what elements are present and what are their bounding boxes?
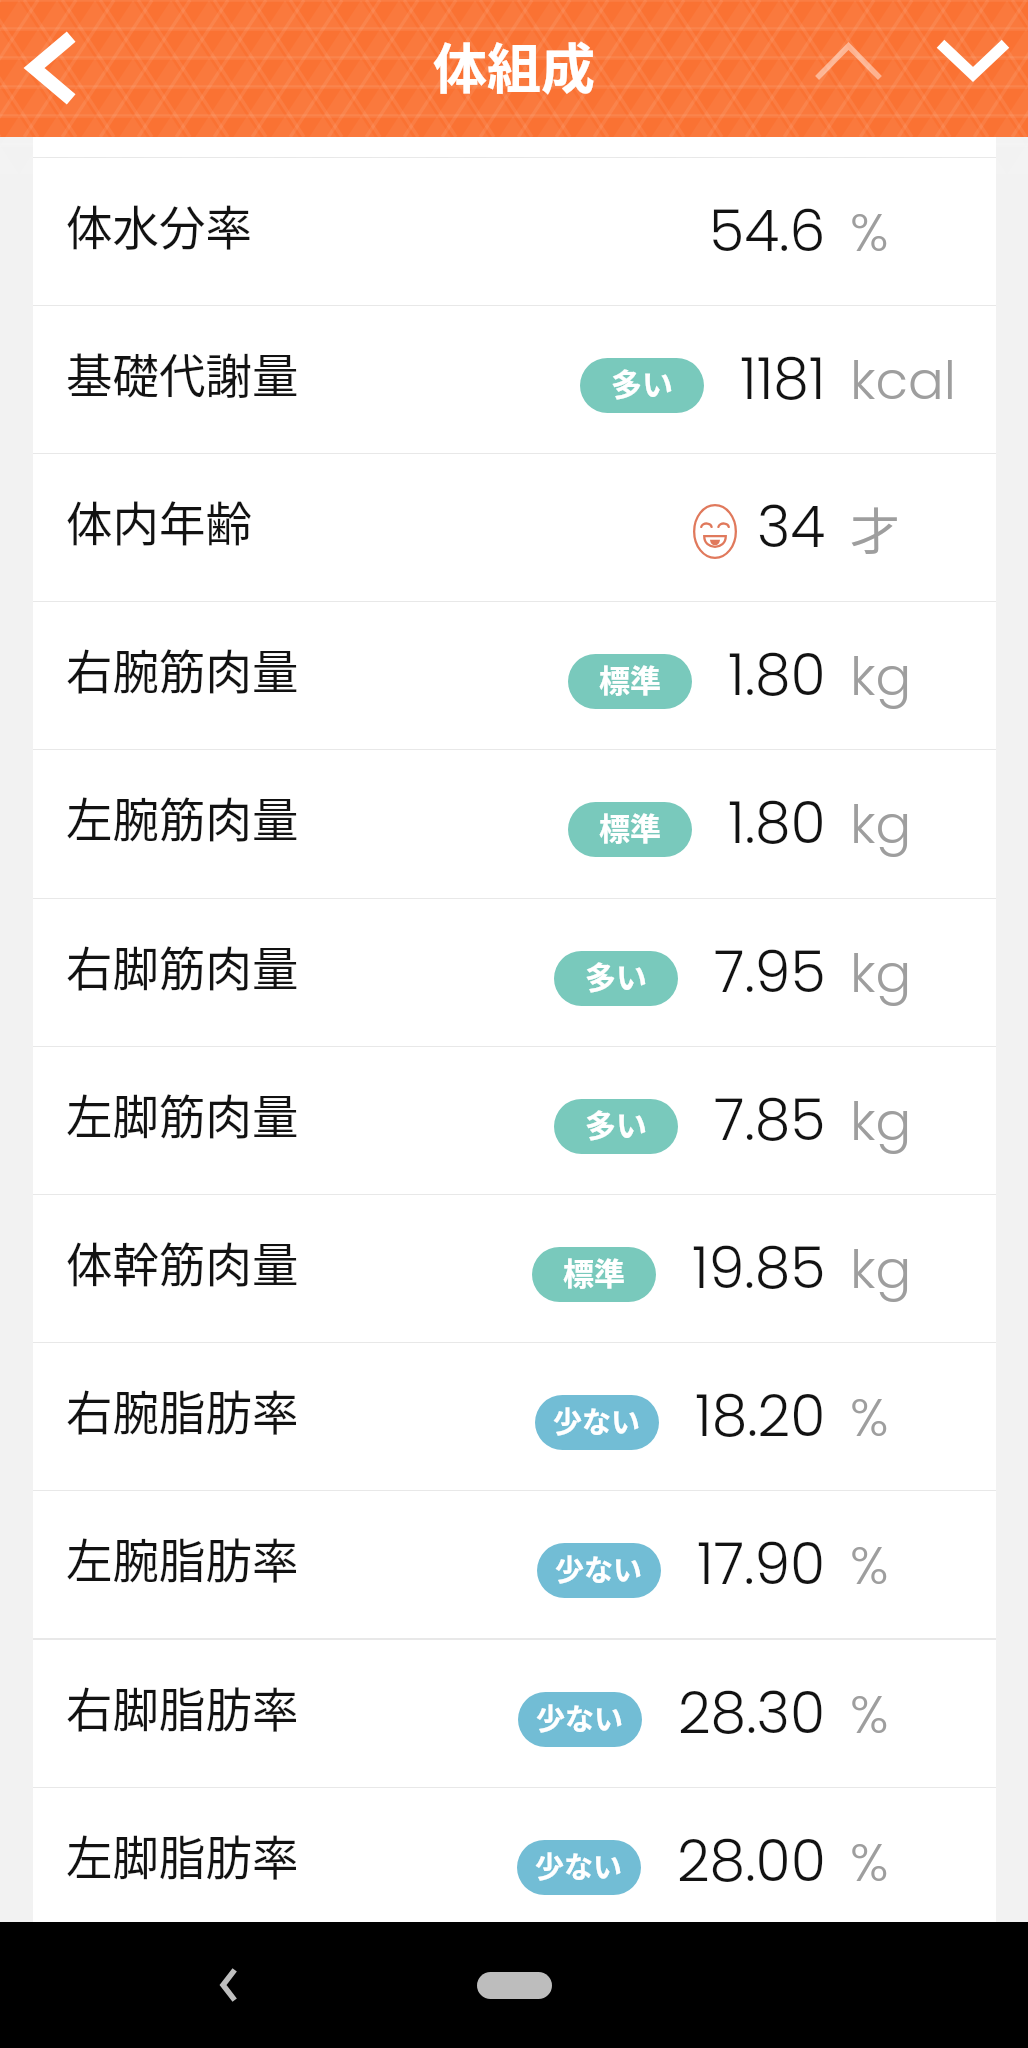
button[interactable]: Back <box>196 1953 260 2017</box>
staticText: 体幹筋肉量 <box>66 1228 299 1295</box>
staticText: 7.85 <box>714 1080 826 1160</box>
staticText: kg <box>850 787 912 861</box>
staticText: 右腕筋肉量 <box>66 635 299 702</box>
staticText: 1.80 <box>728 783 826 863</box>
button[interactable]: 体内年齢 34 才 <box>33 454 996 600</box>
staticText: 19.85 <box>692 1228 826 1308</box>
staticText: 17.90 <box>697 1524 826 1604</box>
staticText: 54.6 <box>709 191 826 271</box>
button[interactable]: 基礎代謝量 多い 1181 kcal <box>33 306 996 452</box>
staticText: kg <box>850 936 912 1010</box>
staticText: % <box>850 1380 889 1454</box>
button[interactable]: 右腕筋肉量 標準 1.80 kg <box>33 602 996 748</box>
staticText: 左腕筋肉量 <box>66 783 299 850</box>
button[interactable]: 右腕脂肪率 少ない 18.20 % <box>33 1343 996 1489</box>
button[interactable]: 左脚筋肉量 多い 7.85 kg <box>33 1047 996 1193</box>
button[interactable]: Next record <box>929 32 1017 90</box>
staticText: 左脚筋肉量 <box>66 1080 299 1147</box>
staticText: kg <box>850 1232 912 1306</box>
staticText: 28.00 <box>677 1821 826 1901</box>
staticText: 多い <box>611 360 673 405</box>
staticText: 才 <box>850 492 900 564</box>
button[interactable]: Home <box>477 1972 552 1999</box>
staticText: 多い <box>585 953 647 998</box>
staticText: 1181 <box>740 339 826 419</box>
staticText: % <box>850 1677 889 1751</box>
button[interactable]: 右脚脂肪率 少ない 28.30 % <box>33 1640 996 1786</box>
staticText: 少ない <box>553 1399 641 1441</box>
button[interactable]: Previous record <box>806 33 892 89</box>
staticText: % <box>850 1825 889 1899</box>
staticText: 体水分率 <box>66 191 252 258</box>
staticText: 体組成 <box>433 26 595 104</box>
staticText: 少ない <box>536 1696 624 1738</box>
staticText: 7.95 <box>714 932 826 1012</box>
staticText: 右脚脂肪率 <box>66 1673 299 1740</box>
staticText: 標準 <box>563 1249 625 1294</box>
staticText: % <box>850 1528 889 1602</box>
staticText: 標準 <box>599 804 661 849</box>
staticText: 左腕脂肪率 <box>66 1524 299 1591</box>
button[interactable]: 左腕脂肪率 少ない 17.90 % <box>33 1491 996 1637</box>
staticText: 左脚脂肪率 <box>66 1821 299 1888</box>
staticText: 18.20 <box>695 1376 826 1456</box>
staticText: % <box>850 195 889 269</box>
staticText: 少ない <box>555 1547 643 1589</box>
button[interactable]: 体水分率 54.6 % <box>33 158 996 304</box>
staticText: 基礎代謝量 <box>66 339 299 406</box>
staticText: 少ない <box>535 1844 623 1886</box>
button[interactable]: 体幹筋肉量 標準 19.85 kg <box>33 1195 996 1341</box>
staticText: kg <box>850 1084 912 1158</box>
staticText: 体内年齢 <box>66 487 252 554</box>
staticText: 多い <box>585 1101 647 1146</box>
staticText: 右脚筋肉量 <box>66 932 299 999</box>
button[interactable]: 左脚脂肪率 少ない 28.00 % <box>33 1788 996 1934</box>
staticText: kg <box>850 639 912 713</box>
staticText: 右腕脂肪率 <box>66 1376 299 1443</box>
button[interactable]: 左腕筋肉量 標準 1.80 kg <box>33 750 996 896</box>
button[interactable]: Back <box>8 18 92 118</box>
staticText: 標準 <box>599 656 661 701</box>
staticText: kcal <box>850 343 956 417</box>
staticText: 1.80 <box>728 635 826 715</box>
button[interactable]: 右脚筋肉量 多い 7.95 kg <box>33 899 996 1045</box>
staticText: 28.30 <box>678 1673 826 1753</box>
staticText: 34 <box>757 487 826 567</box>
